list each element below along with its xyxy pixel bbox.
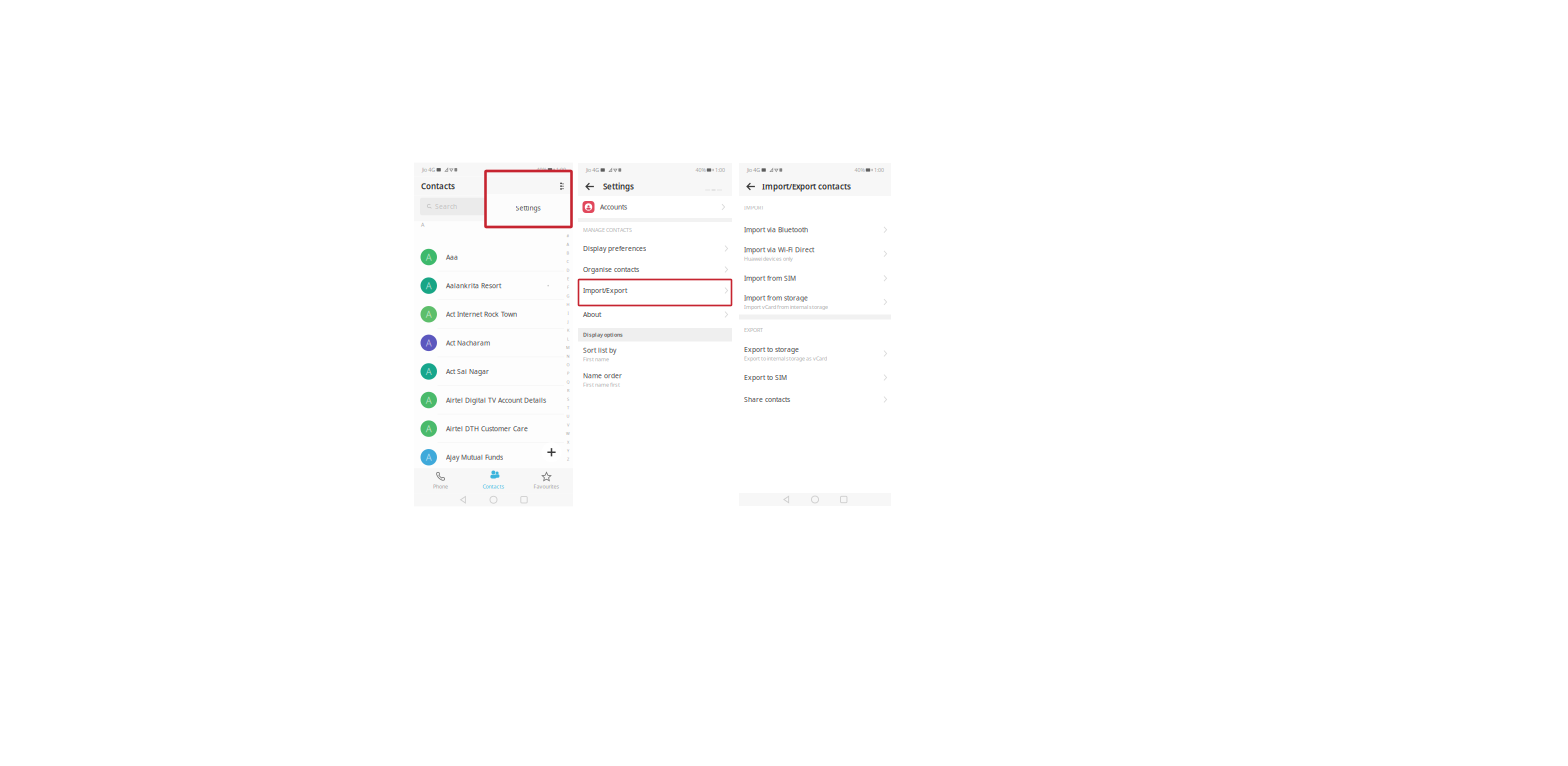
staticText: 1:00 [715, 166, 725, 174]
button[interactable]: Display preferences [578, 238, 732, 259]
staticText: A [426, 422, 432, 435]
button[interactable]: A [414, 386, 564, 414]
staticText: Contacts [421, 181, 455, 191]
staticText: A [426, 451, 432, 463]
staticText: Organise contacts [583, 265, 639, 274]
staticText: 4G [592, 166, 599, 174]
staticText: C [566, 259, 569, 264]
button[interactable]: A [414, 414, 564, 443]
staticText: Y [567, 448, 569, 453]
staticText: A [566, 242, 569, 247]
button[interactable]: Back [743, 177, 759, 196]
staticText: About [583, 310, 601, 319]
staticText: A [426, 308, 432, 320]
button[interactable]: A [414, 357, 564, 386]
button[interactable]: Import from SIM [739, 267, 891, 289]
staticText: L [567, 336, 569, 341]
staticText: N [566, 353, 569, 359]
button[interactable]: Sort list by [578, 341, 732, 367]
button[interactable]: About [578, 301, 732, 328]
staticText: 4G [753, 166, 760, 174]
staticText: Z [567, 457, 569, 462]
staticText: Import via Bluetooth [744, 225, 808, 234]
staticText: T [567, 405, 569, 410]
staticText: Contacts [482, 483, 504, 490]
staticText: U [566, 414, 569, 419]
button[interactable]: Settings [486, 194, 572, 227]
button[interactable]: Accounts [578, 196, 732, 218]
staticText: A [426, 251, 432, 263]
staticText: Accounts [600, 203, 627, 211]
staticText: Name order [583, 371, 622, 380]
button[interactable]: Organise contacts [578, 259, 732, 280]
button[interactable]: A [414, 271, 564, 300]
button[interactable]: A [414, 300, 564, 328]
staticText: S [567, 396, 569, 402]
staticText: E [567, 276, 569, 281]
staticText: M [566, 345, 570, 350]
staticText: 40% [695, 166, 705, 174]
staticText: A [421, 221, 424, 228]
staticText: MANAGE CONTACTS [583, 226, 632, 234]
staticText: Act Internet Rock Town [446, 310, 517, 319]
button[interactable]: Import via Bluetooth [739, 219, 891, 240]
staticText: 1:00 [874, 166, 884, 174]
staticText: Q [566, 379, 569, 384]
staticText: Search [435, 202, 457, 211]
staticText: F [567, 285, 569, 290]
staticText: Share contacts [744, 395, 790, 404]
staticText: 4G [428, 166, 435, 173]
staticText: Import via Wi-Fi Direct [744, 245, 814, 254]
button[interactable]: Export to SIM [739, 366, 891, 388]
staticText: Import/Export contacts [762, 181, 851, 192]
button[interactable]: Contacts [467, 468, 520, 493]
staticText: Export to storage [744, 345, 799, 354]
button[interactable]: Import from storage [739, 289, 891, 314]
staticText: W [566, 431, 570, 436]
staticText: O [566, 362, 569, 367]
staticText: Airtel DTH Customer Care [446, 424, 528, 433]
button[interactable]: Favourites [520, 468, 573, 493]
button[interactable]: Share contacts [739, 388, 891, 410]
button[interactable]: Import via Wi-Fi Direct [739, 240, 891, 267]
button[interactable]: Export to storage [739, 340, 891, 366]
staticText: Aaa [446, 253, 458, 261]
button[interactable]: A [414, 443, 564, 471]
staticText: X [567, 439, 569, 445]
button[interactable]: Import/Export [578, 280, 732, 301]
button[interactable]: Back [582, 177, 598, 196]
staticText: A [426, 337, 432, 349]
staticText: Jio [747, 166, 752, 174]
button[interactable]: More options [556, 177, 570, 196]
staticText: # [566, 233, 569, 238]
staticText: P [567, 371, 569, 376]
staticText: Act Nacharam [446, 338, 490, 347]
button[interactable]: A [414, 243, 564, 271]
staticText: Act Sai Nagar [446, 367, 489, 376]
staticText: B [566, 250, 569, 255]
button[interactable]: Name order [578, 367, 732, 392]
staticText: Settings [603, 181, 634, 192]
staticText: Favourites [533, 483, 559, 490]
staticText: Settings [515, 204, 540, 212]
staticText: Aalankrita Resort [446, 281, 501, 290]
staticText: Ajay Mutual Funds [446, 453, 503, 462]
staticText: 40% [854, 166, 864, 174]
staticText: Import/Export [583, 286, 627, 295]
staticText: Display options [583, 331, 623, 338]
staticText: A [426, 394, 432, 406]
staticText: Huawei devices only [744, 255, 793, 262]
staticText: Import from storage [744, 293, 808, 302]
staticText: Display preferences [583, 244, 646, 253]
staticText: Export to SIM [744, 373, 787, 382]
button[interactable]: A [414, 329, 564, 357]
staticText: IMPORT [744, 204, 764, 211]
staticText: Sort list by [583, 346, 616, 355]
button[interactable]: Phone [414, 468, 467, 493]
staticText: 1:00 [556, 166, 566, 173]
staticText: EXPORT [744, 326, 763, 334]
staticText: Import vCard from internal storage [744, 303, 828, 311]
staticText: K [567, 328, 569, 333]
staticText: Airtel Digital TV Account Details [446, 396, 546, 404]
staticText: R [567, 388, 569, 393]
